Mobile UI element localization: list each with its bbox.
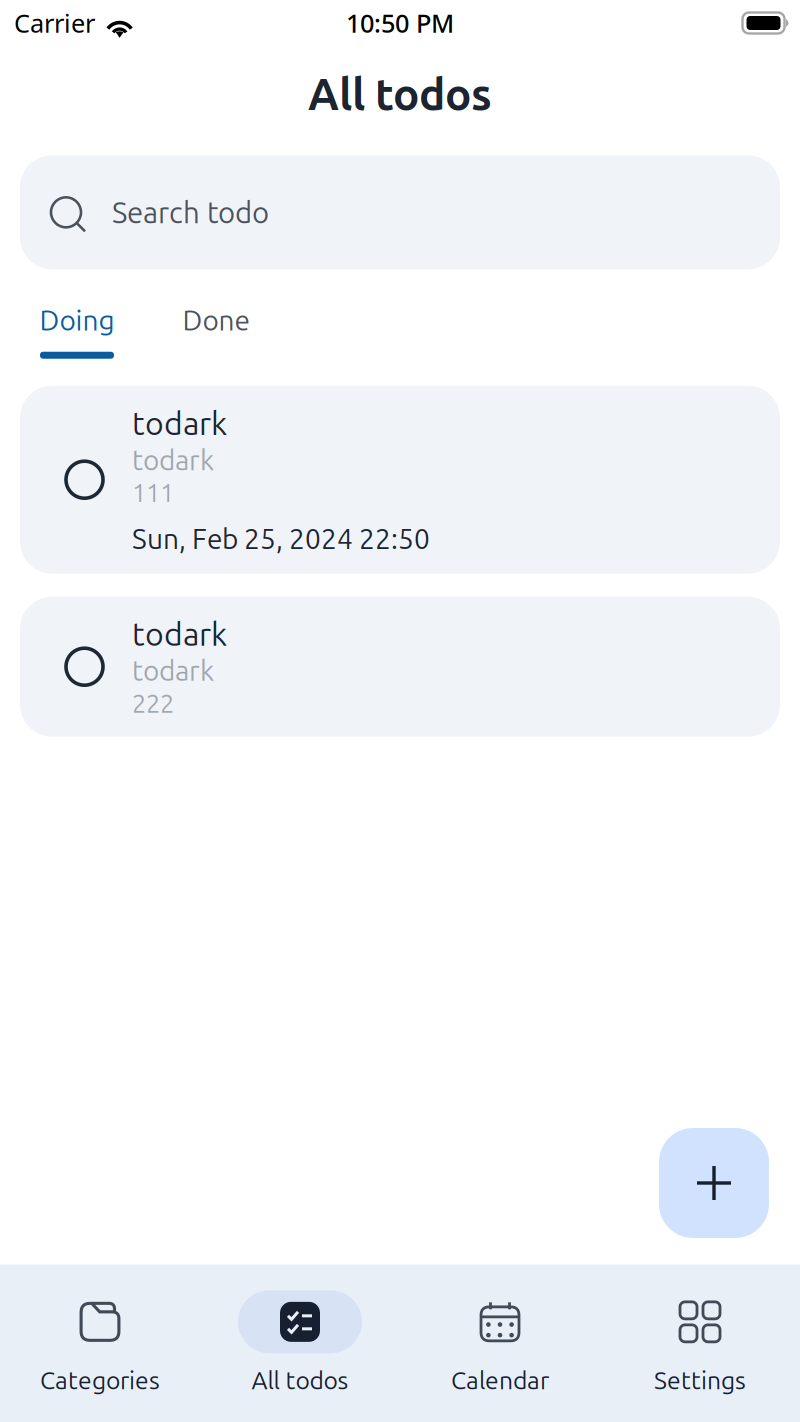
staticText: Doing <box>39 304 114 336</box>
button[interactable]: todark <box>20 386 780 574</box>
button[interactable]: Add todo <box>659 1128 769 1238</box>
button[interactable]: Search todo <box>20 155 780 269</box>
staticText: Carrier <box>14 6 95 40</box>
button[interactable]: Calendar <box>400 1290 600 1394</box>
staticText: Search todo <box>112 196 269 229</box>
staticText: 111 <box>132 478 174 507</box>
button[interactable]: Done <box>146 304 286 336</box>
staticText: todark <box>132 444 214 475</box>
staticText: todark <box>132 616 227 652</box>
staticText: Settings <box>654 1366 746 1394</box>
staticText: Categories <box>40 1366 160 1394</box>
button[interactable]: Doing <box>8 304 146 359</box>
staticText: All todos <box>308 69 492 118</box>
button[interactable]: All todos <box>200 1290 400 1394</box>
staticText: Done <box>182 304 249 336</box>
staticText: todark <box>132 405 227 441</box>
staticText: 10:50 PM <box>346 6 454 40</box>
staticText: Sun, Feb 25, 2024 22:50 <box>132 523 430 554</box>
staticText: Calendar <box>451 1366 549 1394</box>
staticText: todark <box>132 655 214 686</box>
staticText: 222 <box>132 689 174 717</box>
staticText: All todos <box>251 1366 348 1394</box>
button[interactable]: Categories <box>0 1290 200 1394</box>
button[interactable]: todark <box>20 597 780 737</box>
button[interactable]: Settings <box>600 1290 800 1394</box>
